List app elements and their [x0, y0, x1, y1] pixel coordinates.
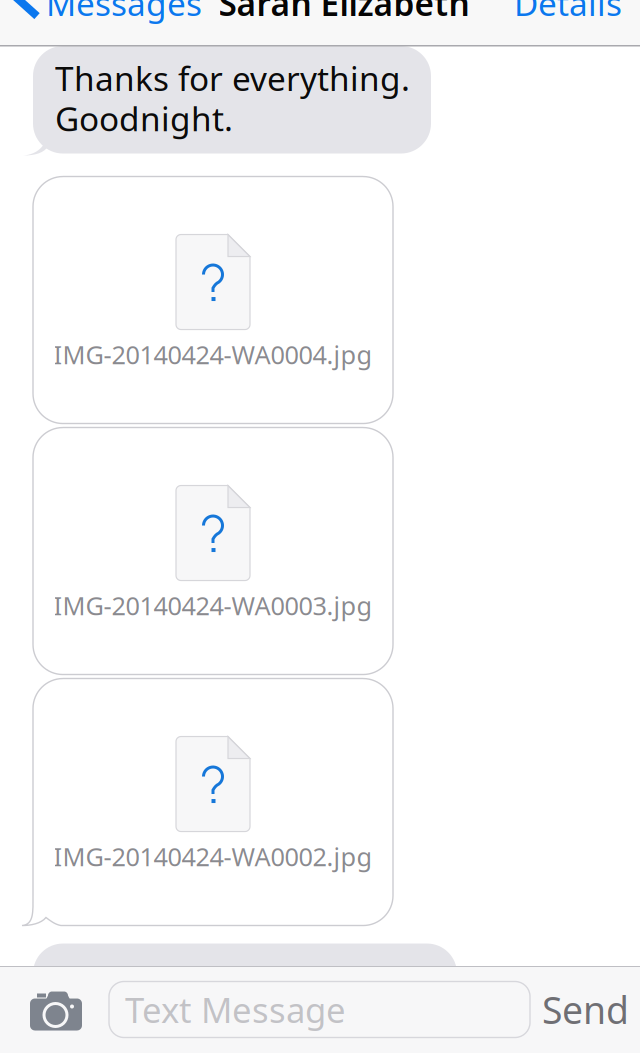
staticText: Goodnight. [55, 96, 233, 141]
staticText: Send [542, 985, 629, 1034]
button[interactable]: Camera [30, 980, 82, 1038]
button[interactable]: IMG-20140424-WA0002.jpg [33, 678, 393, 925]
button[interactable]: Details [514, 0, 640, 25]
staticText: IMG-20140424-WA0003.jpg [53, 588, 372, 622]
staticText: Thanks for everything. [55, 56, 410, 100]
button[interactable]: Send [542, 985, 629, 1034]
staticText: Text Message [125, 986, 346, 1032]
staticText: Messages [46, 0, 202, 25]
button[interactable]: IMG-20140424-WA0003.jpg [33, 427, 393, 674]
staticText: Details [514, 0, 622, 25]
staticText: Sarah Elizabeth [218, 0, 469, 25]
button[interactable]: IMG-20140424-WA0004.jpg [33, 176, 393, 423]
staticText: IMG-20140424-WA0002.jpg [53, 839, 372, 873]
button[interactable]: Messages [0, 0, 202, 25]
staticText: IMG-20140424-WA0004.jpg [53, 337, 372, 371]
